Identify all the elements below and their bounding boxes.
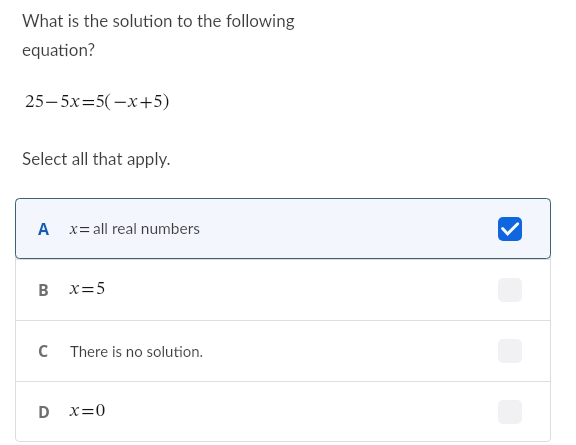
staticText: A xyxy=(38,218,50,240)
staticText: C xyxy=(38,340,49,362)
staticText: x = 5 xyxy=(70,280,106,299)
staticText: D xyxy=(38,401,50,423)
button[interactable]: C xyxy=(15,320,551,381)
staticText: x = 0 xyxy=(70,402,106,421)
staticText: What is the solution to the following eq… xyxy=(22,10,300,59)
staticText: 25 − 5 x =5( − x +5) xyxy=(25,93,169,112)
button[interactable]: A xyxy=(15,198,551,259)
button[interactable]: Selected answer xyxy=(498,217,522,241)
button[interactable]: B xyxy=(15,259,551,320)
staticText: There is no solution. xyxy=(70,342,204,360)
button[interactable]: D xyxy=(15,381,551,442)
staticText: x = xyxy=(70,222,91,238)
staticText: all real numbers xyxy=(93,219,201,238)
staticText: B xyxy=(38,279,49,301)
staticText: Select all that apply. xyxy=(22,148,171,168)
